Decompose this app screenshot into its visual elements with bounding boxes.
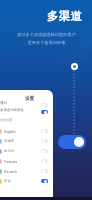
staticText: 设置: [25, 96, 35, 102]
staticText: Deutsch: [4, 169, 18, 174]
staticText: English: [4, 129, 16, 134]
button[interactable]: 中文: [0, 177, 48, 185]
staticText: 多渠道消息推送: [0, 108, 24, 112]
staticText: 多渠道: [47, 9, 83, 23]
staticText: Français: [4, 159, 18, 164]
button[interactable]: Toggle: [41, 159, 48, 163]
button[interactable]: Toggle: [41, 179, 48, 183]
button[interactable]: Enable multi channel: [58, 135, 86, 149]
button[interactable]: Deutsch: [0, 167, 48, 175]
staticText: 中文: [4, 179, 11, 183]
button[interactable]: 한국어: [0, 147, 48, 155]
button[interactable]: Toggle: [41, 110, 48, 114]
staticText: 通过多个渠道精准触达您的客户 世界各个角落的故事: [17, 32, 76, 45]
button[interactable]: Français: [0, 157, 48, 165]
button[interactable]: English: [0, 127, 48, 135]
button[interactable]: Toggle: [41, 129, 48, 133]
staticText: 语言设置: [0, 118, 13, 122]
staticText: 日本語: [4, 139, 15, 143]
button[interactable]: Info: [71, 63, 78, 70]
button[interactable]: Toggle: [41, 169, 48, 173]
button[interactable]: 日本語: [0, 137, 48, 145]
staticText: 한국어: [4, 149, 15, 153]
staticText: 通知: [0, 101, 7, 105]
button[interactable]: Toggle: [41, 149, 48, 153]
button[interactable]: Toggle: [41, 139, 48, 143]
button[interactable]: Toggle: [41, 103, 48, 107]
